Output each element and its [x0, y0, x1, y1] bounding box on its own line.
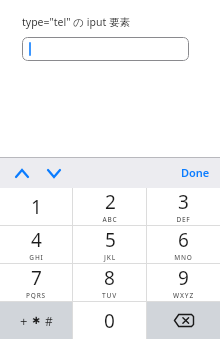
button[interactable]: 9 — [147, 264, 220, 301]
button[interactable]: 4 — [0, 226, 72, 263]
staticText: + — [20, 312, 28, 330]
staticText: TUV — [102, 291, 117, 300]
staticText: MNO — [174, 253, 193, 262]
button[interactable]: 6 — [147, 226, 220, 263]
button[interactable] — [22, 37, 189, 61]
staticText: 5 — [105, 227, 116, 253]
staticText: Done — [181, 165, 210, 180]
staticText: 4 — [31, 227, 42, 253]
button[interactable]: Previous field — [9, 161, 35, 185]
staticText: GHI — [29, 253, 44, 262]
button[interactable]: 1 — [0, 188, 72, 225]
staticText: PQRS — [26, 291, 46, 300]
staticText: ABC — [102, 215, 118, 224]
staticText: 0 — [104, 308, 115, 334]
button[interactable]: 0 — [73, 302, 146, 339]
staticText: JKL — [104, 253, 116, 262]
button[interactable]: 3 — [147, 188, 220, 225]
staticText: 1 — [31, 194, 42, 220]
button[interactable]: Next field — [41, 161, 67, 185]
button[interactable]: 8 — [73, 264, 146, 301]
staticText: 7 — [31, 265, 42, 291]
button[interactable]: 2 — [73, 188, 146, 225]
staticText: 6 — [178, 227, 189, 253]
button[interactable]: Backspace — [147, 302, 220, 339]
staticText: type="tel" の iput 要素 — [22, 15, 130, 29]
staticText: 8 — [104, 265, 115, 291]
staticText: DEF — [176, 215, 191, 224]
staticText: WXYZ — [173, 291, 194, 300]
staticText: ✱ — [32, 315, 41, 327]
button[interactable]: Plus star hash — [0, 302, 72, 339]
staticText: # — [45, 313, 53, 329]
staticText: 2 — [105, 189, 116, 215]
button[interactable]: 5 — [73, 226, 146, 263]
staticText: 9 — [178, 265, 189, 291]
button[interactable]: 7 — [0, 264, 72, 301]
button[interactable]: Done — [171, 161, 220, 184]
staticText: 3 — [178, 189, 189, 215]
